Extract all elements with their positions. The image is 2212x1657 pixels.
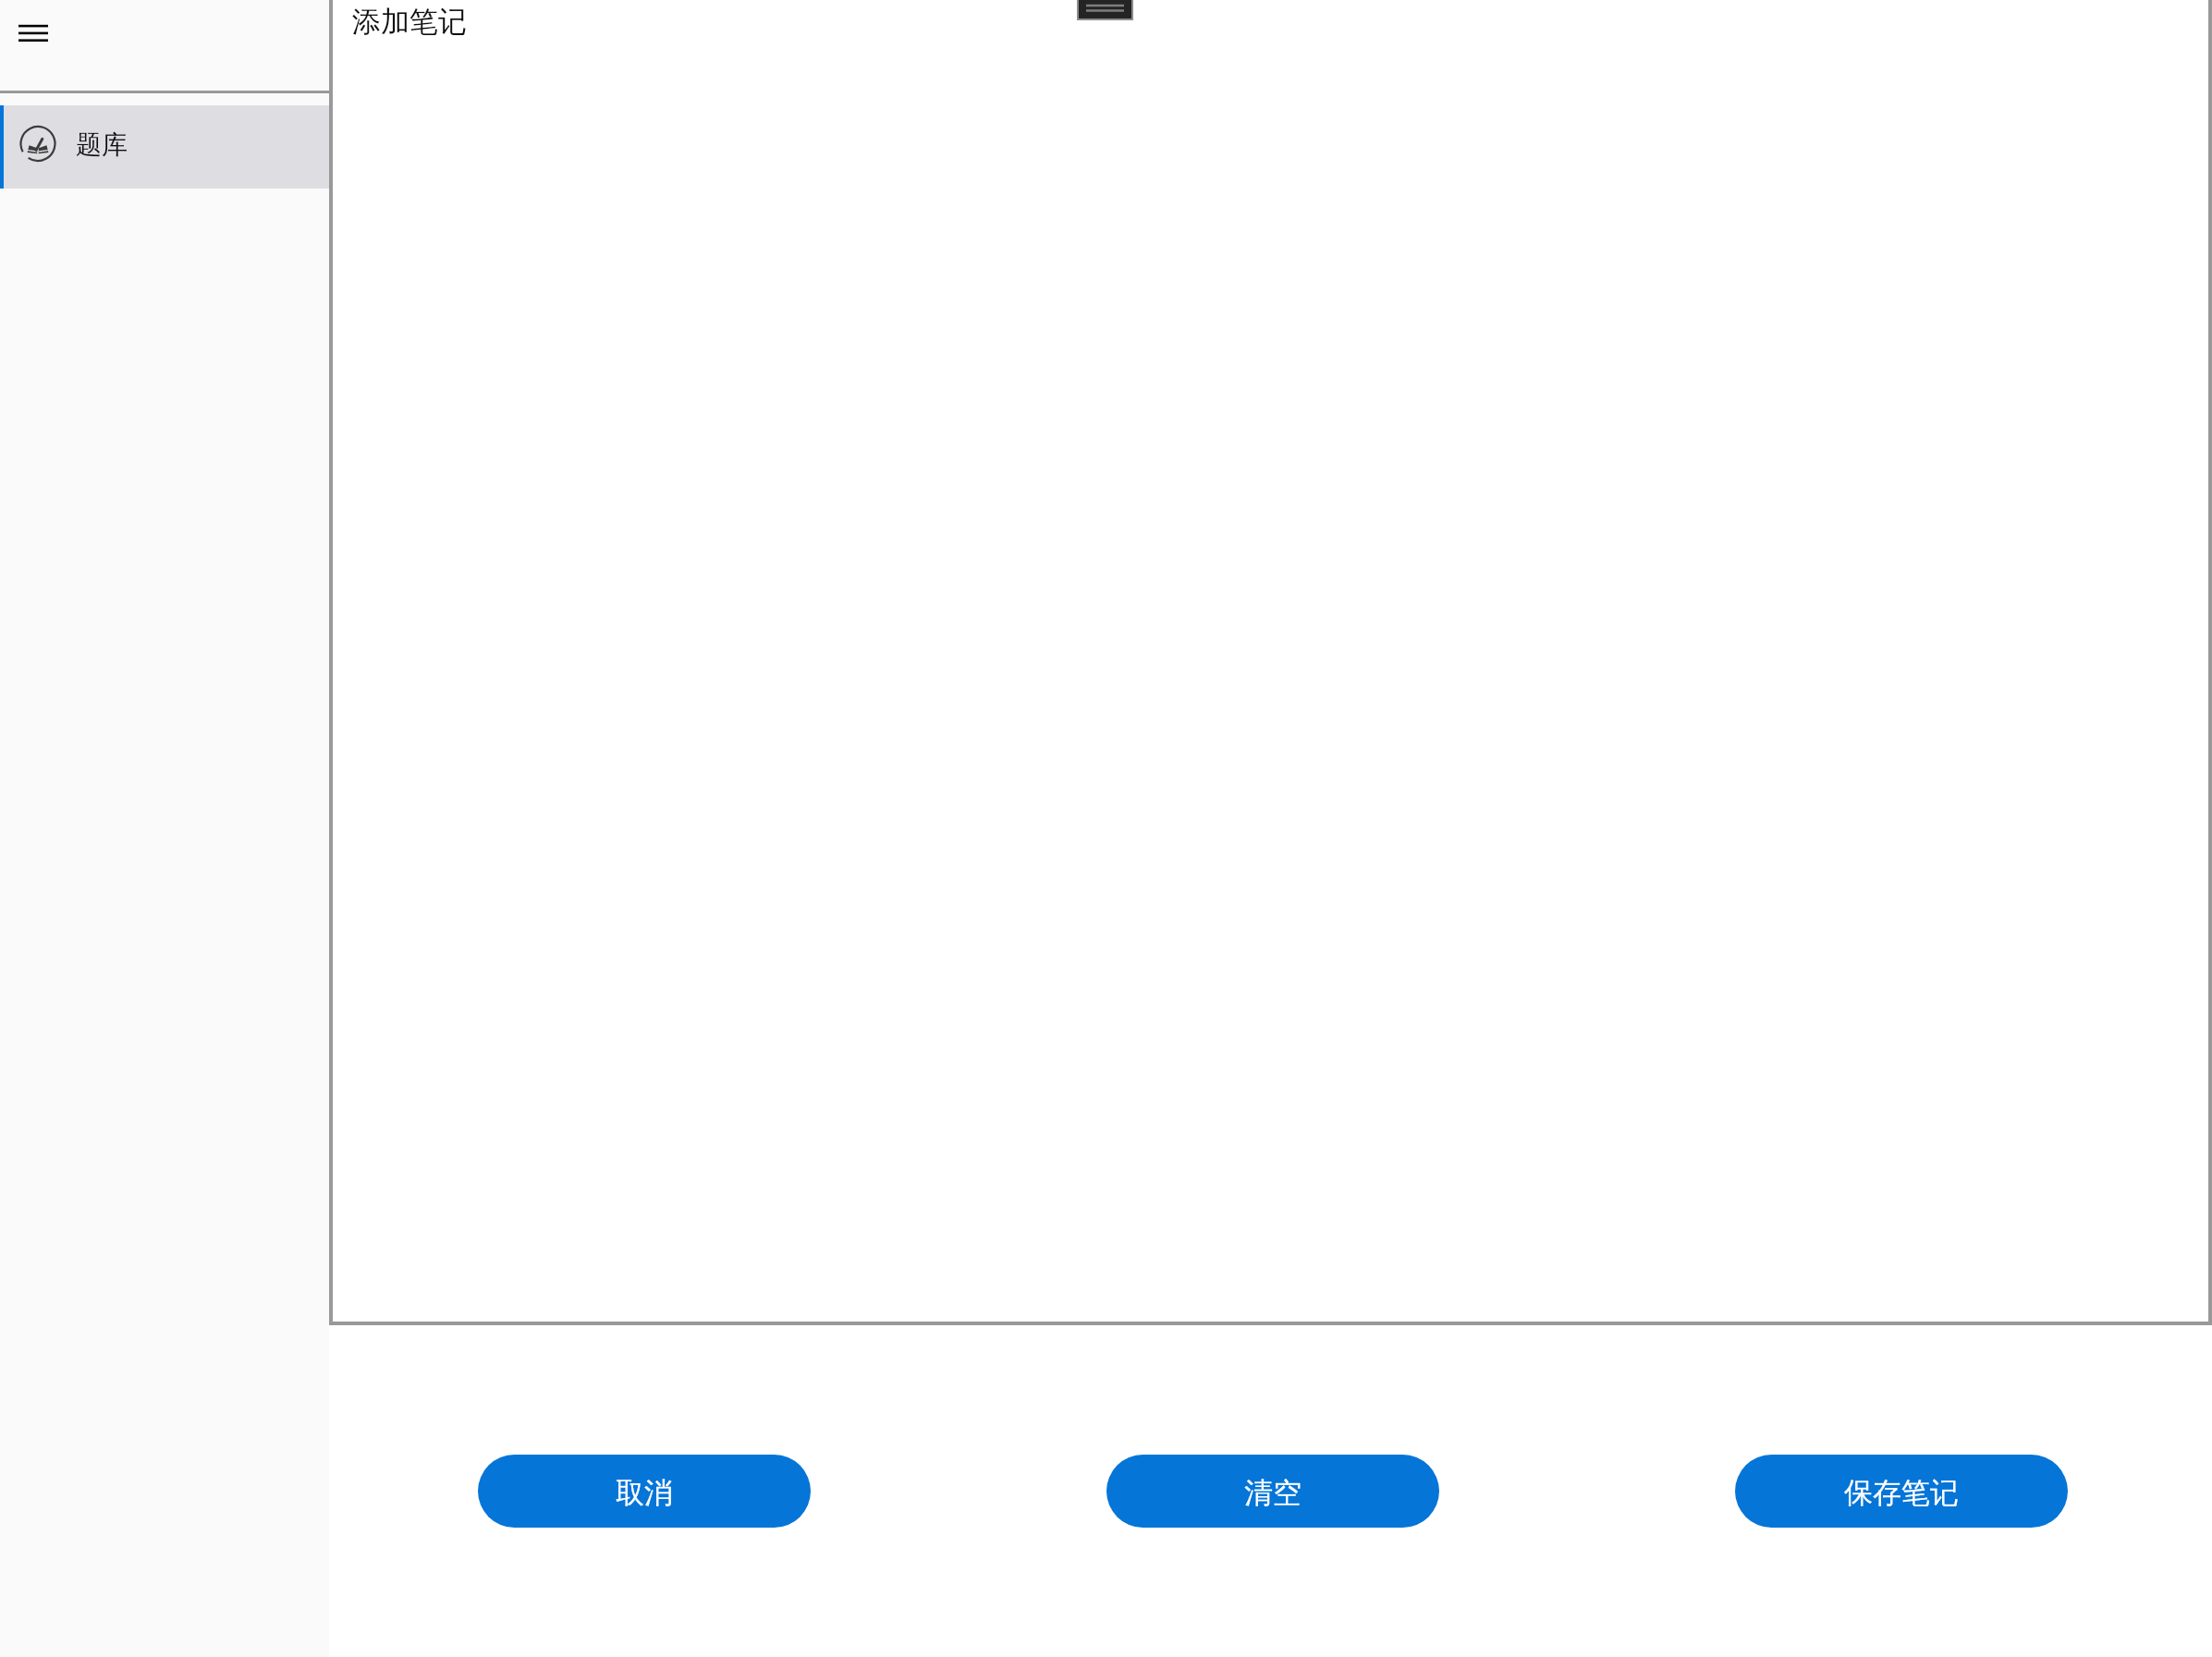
button[interactable]: Open navigation menu: [4, 3, 63, 62]
staticText: 题库: [76, 128, 128, 161]
staticText: 清空: [1244, 1475, 1302, 1511]
staticText: 取消: [616, 1475, 673, 1511]
button[interactable]: 取消: [478, 1455, 811, 1528]
button[interactable]: Note text field: [329, 0, 2212, 1325]
button[interactable]: Resize handle: [1077, 0, 1133, 20]
staticText: 保存笔记: [1844, 1475, 1959, 1511]
button[interactable]: 清空: [1106, 1455, 1439, 1528]
button[interactable]: 保存笔记: [1735, 1455, 2068, 1528]
button[interactable]: 题库: [0, 105, 329, 189]
staticText: 添加笔记: [352, 4, 467, 40]
